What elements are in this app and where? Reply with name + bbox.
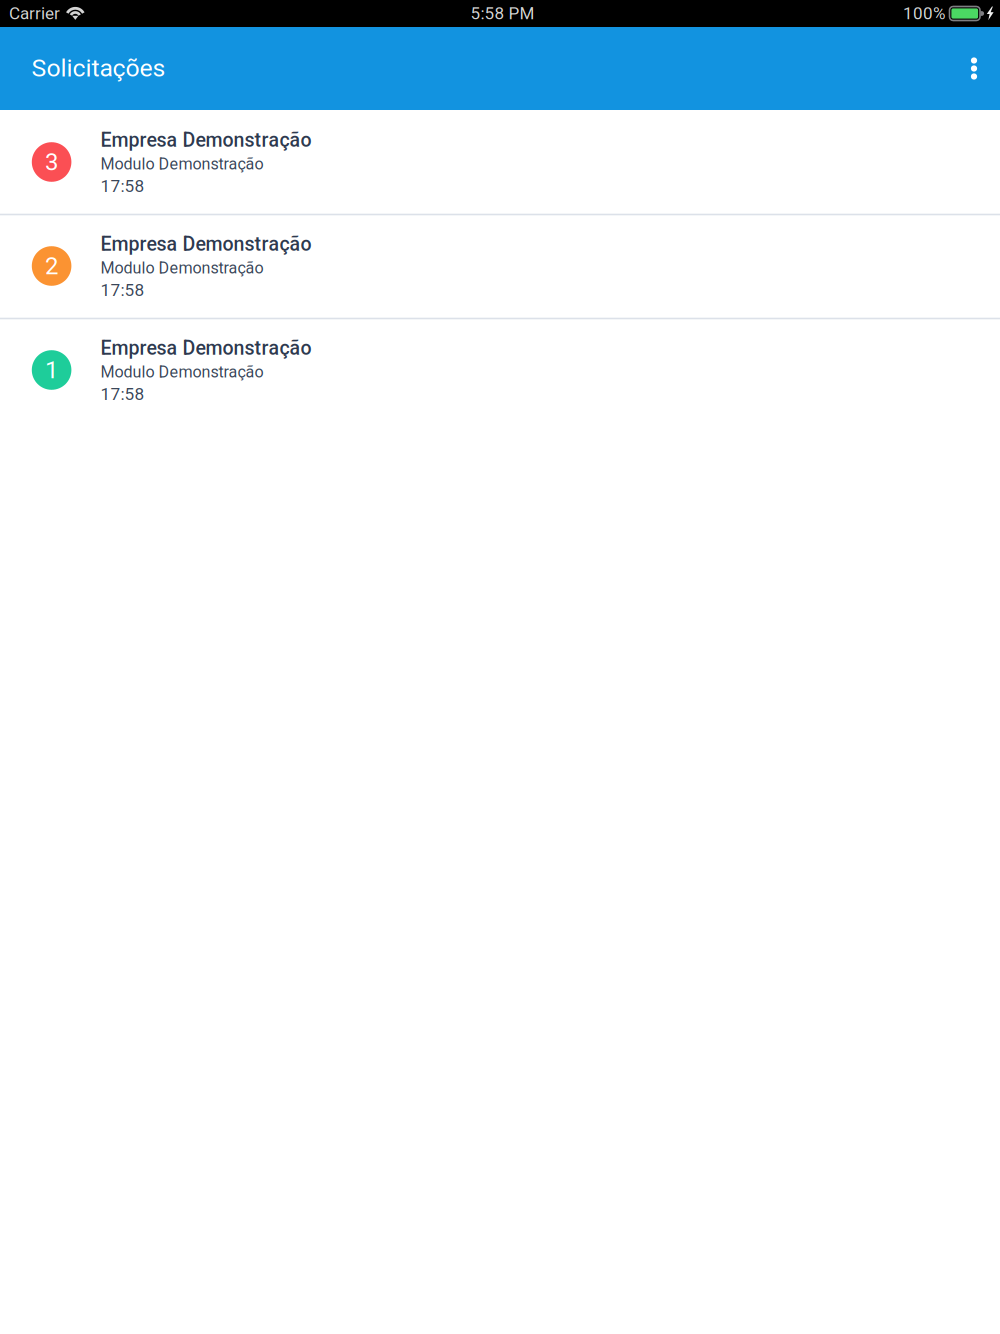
staticText: 3 — [45, 148, 58, 176]
staticText: Carrier — [9, 3, 60, 23]
button[interactable]: 3 — [0, 110, 1000, 214]
staticText: Modulo Demonstração — [100, 154, 263, 173]
staticText: Solicitações — [32, 53, 166, 82]
button[interactable]: More options — [948, 35, 1000, 101]
staticText: Modulo Demonstração — [100, 258, 263, 277]
staticText: Modulo Demonstração — [100, 362, 263, 381]
staticText: Empresa Demonstração — [100, 233, 311, 256]
button[interactable]: 2 — [0, 214, 1000, 318]
staticText: Empresa Demonstração — [100, 337, 311, 360]
staticText: 5:58 PM — [470, 3, 534, 23]
staticText: 2 — [45, 252, 58, 280]
staticText: 17:58 — [100, 176, 144, 196]
staticText: 1 — [45, 356, 58, 384]
button[interactable]: 1 — [0, 318, 1000, 422]
staticText: 17:58 — [100, 384, 144, 404]
staticText: 17:58 — [100, 280, 144, 300]
staticText: Empresa Demonstração — [100, 129, 311, 152]
staticText: 100% — [903, 3, 946, 23]
